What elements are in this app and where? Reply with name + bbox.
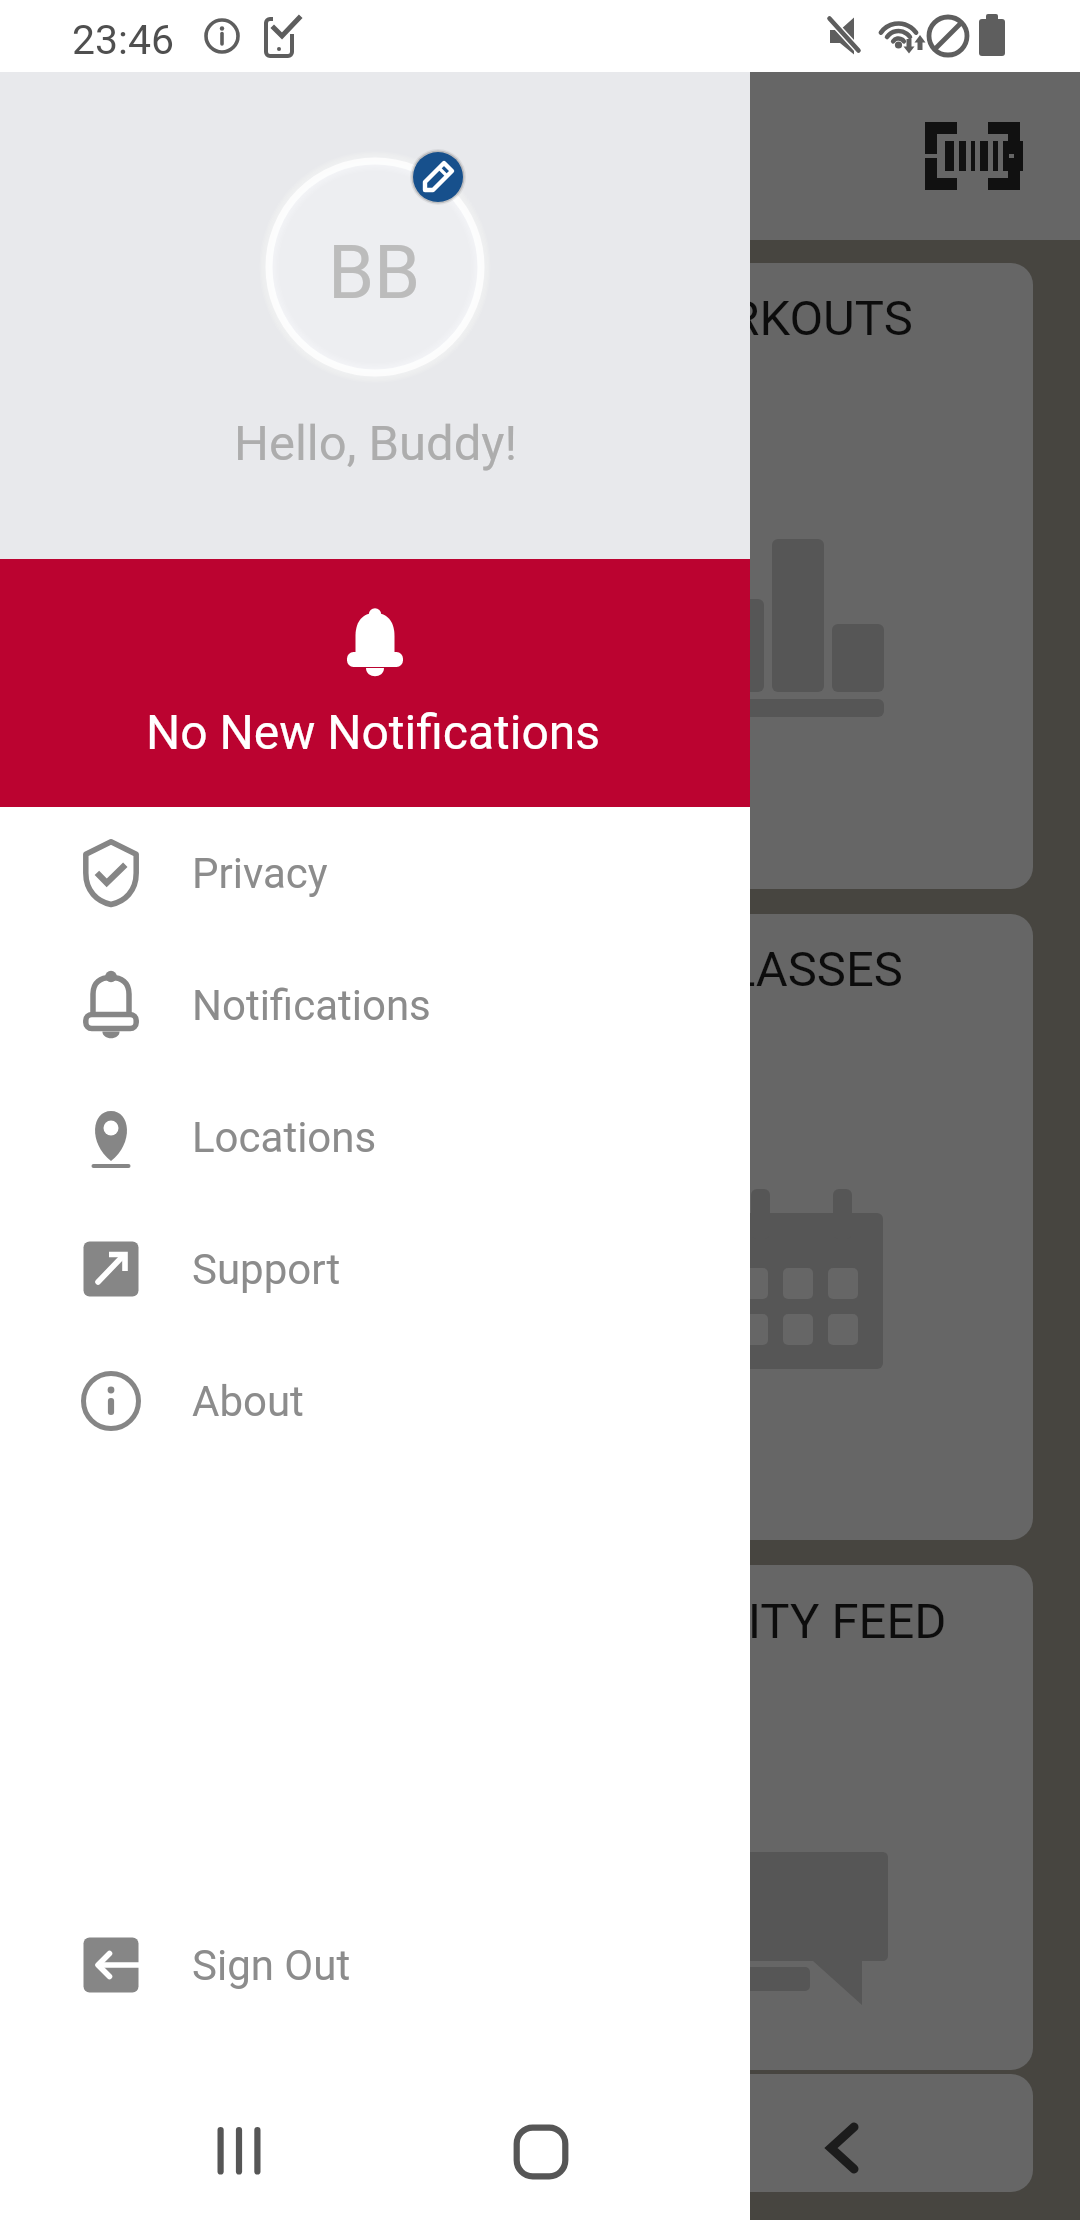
staticText: Locations xyxy=(192,1113,377,1162)
button[interactable]: Profile photo xyxy=(263,155,487,379)
button[interactable]: Sign Out xyxy=(0,1899,750,2031)
staticText: WORKOUTS xyxy=(652,290,913,347)
staticText: BB xyxy=(328,229,421,316)
staticText: About xyxy=(192,1377,304,1426)
staticText: ACTIVITY FEED xyxy=(611,1593,947,1650)
staticText: Sign Out xyxy=(192,1941,351,1990)
button[interactable]: Locations xyxy=(0,1071,750,1203)
staticText: CLASSES xyxy=(697,941,903,998)
button[interactable]: Recent apps xyxy=(180,2090,300,2220)
button[interactable]: Home xyxy=(481,2090,601,2220)
staticText: Privacy xyxy=(192,849,328,898)
staticText: Hello, Buddy! xyxy=(234,415,518,472)
button[interactable]: Privacy xyxy=(0,807,750,939)
staticText: No New Notifications xyxy=(146,704,601,760)
button[interactable]: Close navigation drawer xyxy=(750,0,1080,2220)
button[interactable]: Notifications xyxy=(0,939,750,1071)
staticText: Notifications xyxy=(192,981,431,1030)
staticText: Support xyxy=(192,1245,341,1294)
staticText: 23:46 xyxy=(72,16,175,64)
button[interactable]: No New Notifications xyxy=(0,559,750,807)
button[interactable]: Support xyxy=(0,1203,750,1335)
button[interactable]: About xyxy=(0,1335,750,1467)
button[interactable]: Edit profile xyxy=(410,149,466,205)
